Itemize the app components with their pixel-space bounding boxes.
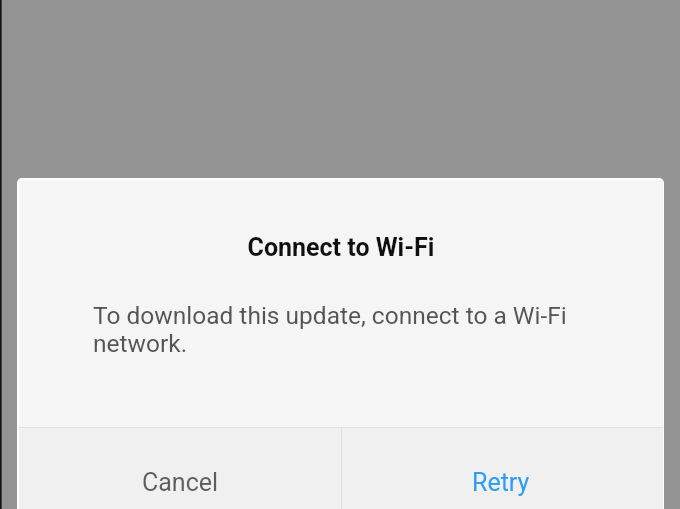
staticText: Cancel bbox=[142, 468, 219, 497]
button[interactable]: Retry bbox=[342, 428, 663, 509]
staticText: To download this update, connect to a Wi… bbox=[93, 301, 593, 358]
staticText: Retry bbox=[472, 468, 530, 497]
staticText: Connect to Wi-Fi bbox=[19, 233, 663, 262]
button[interactable]: Cancel bbox=[19, 428, 341, 509]
